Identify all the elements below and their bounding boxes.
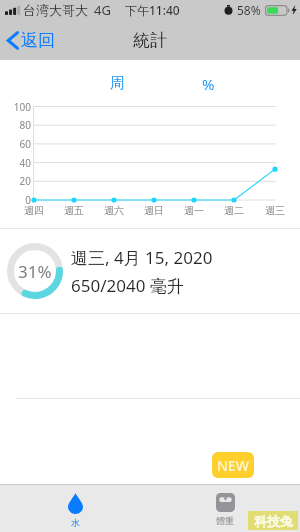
staticText: 20 — [0, 174, 31, 188]
staticText: 下午11:40 — [125, 2, 180, 18]
staticText: 31% — [18, 260, 52, 283]
button[interactable]: 31% — [0, 229, 300, 313]
staticText: 週日 — [134, 204, 174, 217]
staticText: 0 — [0, 193, 31, 207]
button[interactable]: 體重 — [150, 484, 300, 532]
staticText: 650/2040 毫升 — [71, 274, 184, 297]
staticText: 60 — [0, 137, 31, 151]
button[interactable]: 周 — [101, 69, 134, 98]
staticText: 週三 — [255, 204, 295, 217]
staticText: 週二 — [214, 204, 254, 217]
staticText: NEW — [217, 456, 249, 475]
staticText: 週六 — [94, 204, 134, 217]
staticText: 水 — [71, 517, 80, 528]
staticText: 週四 — [14, 204, 54, 217]
staticText: 58% — [237, 2, 261, 18]
staticText: 100 — [0, 100, 31, 114]
button[interactable]: NEW — [212, 452, 254, 478]
staticText: 科技兔 — [254, 513, 293, 529]
staticText: 返回 — [21, 30, 55, 51]
staticText: 週五 — [54, 204, 94, 217]
button[interactable]: 返回 — [0, 25, 65, 56]
staticText: 體重 — [216, 515, 234, 526]
staticText: 統計 — [133, 30, 167, 51]
button[interactable]: 水 — [0, 484, 150, 532]
staticText: 週一 — [174, 204, 214, 217]
staticText: 80 — [0, 118, 31, 132]
staticText: 4G — [94, 1, 111, 19]
button[interactable]: % — [193, 69, 224, 99]
staticText: % — [202, 74, 215, 94]
staticText: 周 — [110, 74, 125, 93]
staticText: 週三, 4月 15, 2020 — [71, 246, 213, 269]
staticText: 台湾大哥大 — [23, 2, 88, 18]
staticText: 40 — [0, 156, 31, 170]
